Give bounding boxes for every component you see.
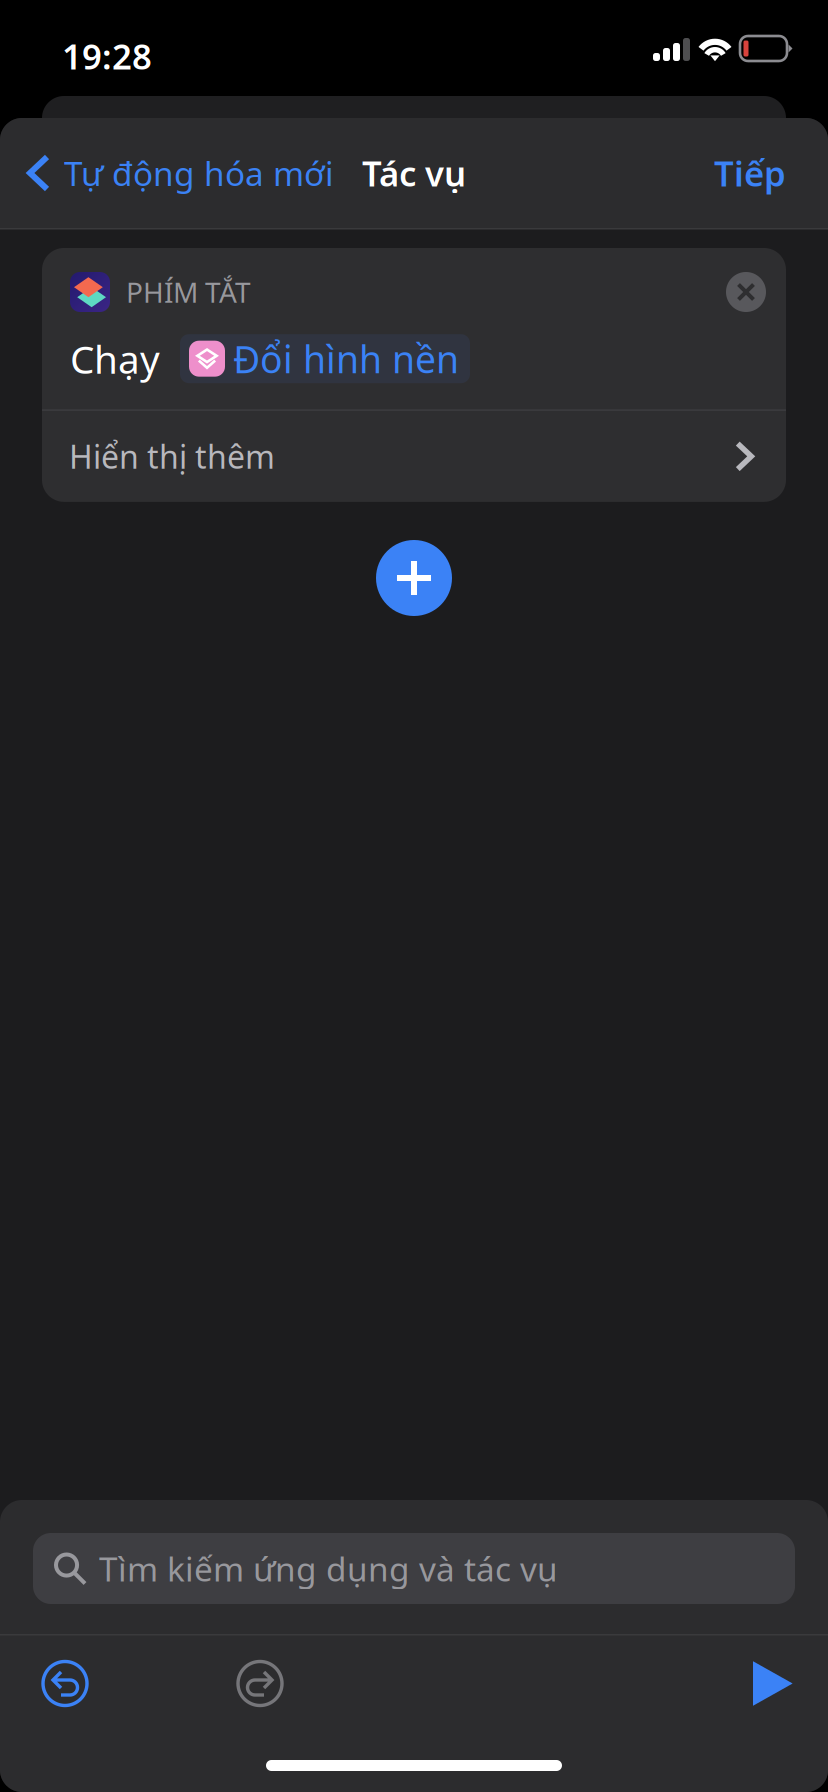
button[interactable]: Remove action (718, 264, 774, 320)
staticText: PHÍM TẮT (126, 273, 251, 311)
button[interactable]: Undo (15, 1635, 115, 1731)
button[interactable]: Tiếp (672, 118, 828, 228)
staticText: Tác vụ (362, 150, 466, 196)
button[interactable]: Run shortcut (722, 1635, 822, 1731)
staticText: Hiển thị thêm (69, 435, 275, 478)
button[interactable]: Hiển thị thêm (42, 411, 786, 502)
staticText: Đổi hình nền (233, 334, 459, 383)
staticText: Tự động hóa mới (64, 151, 334, 195)
staticText: Tiếp (714, 150, 786, 196)
button[interactable]: Redo (210, 1635, 310, 1731)
staticText: Tìm kiếm ứng dụng và tác vụ (99, 1546, 558, 1591)
button[interactable]: Tự động hóa mới (0, 118, 350, 228)
button[interactable]: Add action (359, 523, 469, 633)
staticText: Chạy (70, 333, 160, 384)
button[interactable]: Tìm kiếm ứng dụng và tác vụ (33, 1533, 795, 1604)
staticText: 19:28 (62, 33, 152, 79)
